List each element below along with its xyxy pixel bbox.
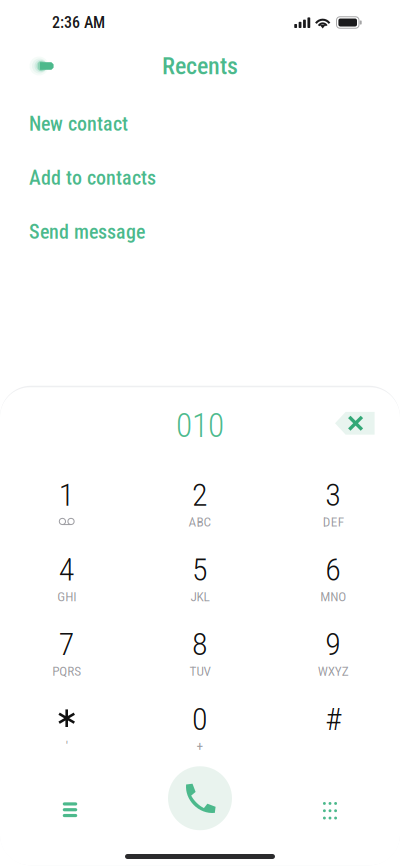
staticText: Add to contacts bbox=[29, 166, 156, 190]
staticText: TUV bbox=[189, 663, 210, 679]
button[interactable]: 2 bbox=[133, 476, 267, 532]
staticText: 7 bbox=[59, 625, 75, 663]
staticText: Send message bbox=[29, 220, 145, 244]
staticText: PQRS bbox=[52, 663, 81, 679]
staticText: WXYZ bbox=[318, 663, 349, 679]
staticText: 3 bbox=[325, 476, 341, 513]
staticText: # bbox=[325, 700, 341, 738]
staticText: 6 bbox=[325, 551, 341, 588]
button[interactable]: 9 bbox=[267, 625, 400, 681]
staticText: 9 bbox=[325, 625, 341, 663]
staticText: DEF bbox=[323, 514, 344, 530]
staticText: 4 bbox=[59, 551, 75, 588]
button[interactable]: Call bbox=[168, 766, 232, 830]
staticText: ABC bbox=[188, 514, 211, 530]
staticText: 1 bbox=[59, 476, 75, 513]
button[interactable]: Call history bbox=[35, 778, 105, 842]
button[interactable]: 5 bbox=[133, 551, 267, 607]
button[interactable]: Delete bbox=[326, 401, 384, 445]
button[interactable]: 3 bbox=[267, 476, 400, 532]
button[interactable]: Send message bbox=[0, 205, 400, 259]
staticText: ' bbox=[66, 738, 68, 754]
staticText: GHI bbox=[57, 589, 76, 604]
staticText: 0 bbox=[192, 700, 208, 738]
button[interactable]: Add to contacts bbox=[0, 151, 400, 205]
button[interactable]: # bbox=[267, 700, 400, 756]
staticText: 8 bbox=[192, 625, 208, 663]
staticText: Recents bbox=[162, 52, 238, 80]
staticText: + bbox=[196, 738, 203, 754]
button[interactable]: 7 bbox=[0, 625, 133, 681]
staticText: JKL bbox=[190, 589, 209, 604]
button[interactable]: 8 bbox=[133, 625, 267, 681]
button[interactable]: 1 bbox=[0, 476, 133, 532]
staticText: 5 bbox=[192, 551, 208, 588]
button[interactable]: 0 bbox=[133, 700, 267, 756]
staticText: 2:36 AM bbox=[52, 13, 105, 32]
button[interactable]: Keypad bbox=[295, 779, 365, 843]
button[interactable]: Back bbox=[0, 45, 80, 87]
staticText: 010 bbox=[176, 406, 224, 445]
button[interactable]: New contact bbox=[0, 97, 400, 151]
staticText: New contact bbox=[29, 112, 128, 136]
button[interactable]: ' bbox=[0, 700, 133, 756]
staticText: 2 bbox=[192, 476, 208, 513]
button[interactable]: 6 bbox=[267, 551, 400, 607]
button[interactable]: 4 bbox=[0, 551, 133, 607]
staticText: MNO bbox=[320, 589, 346, 604]
